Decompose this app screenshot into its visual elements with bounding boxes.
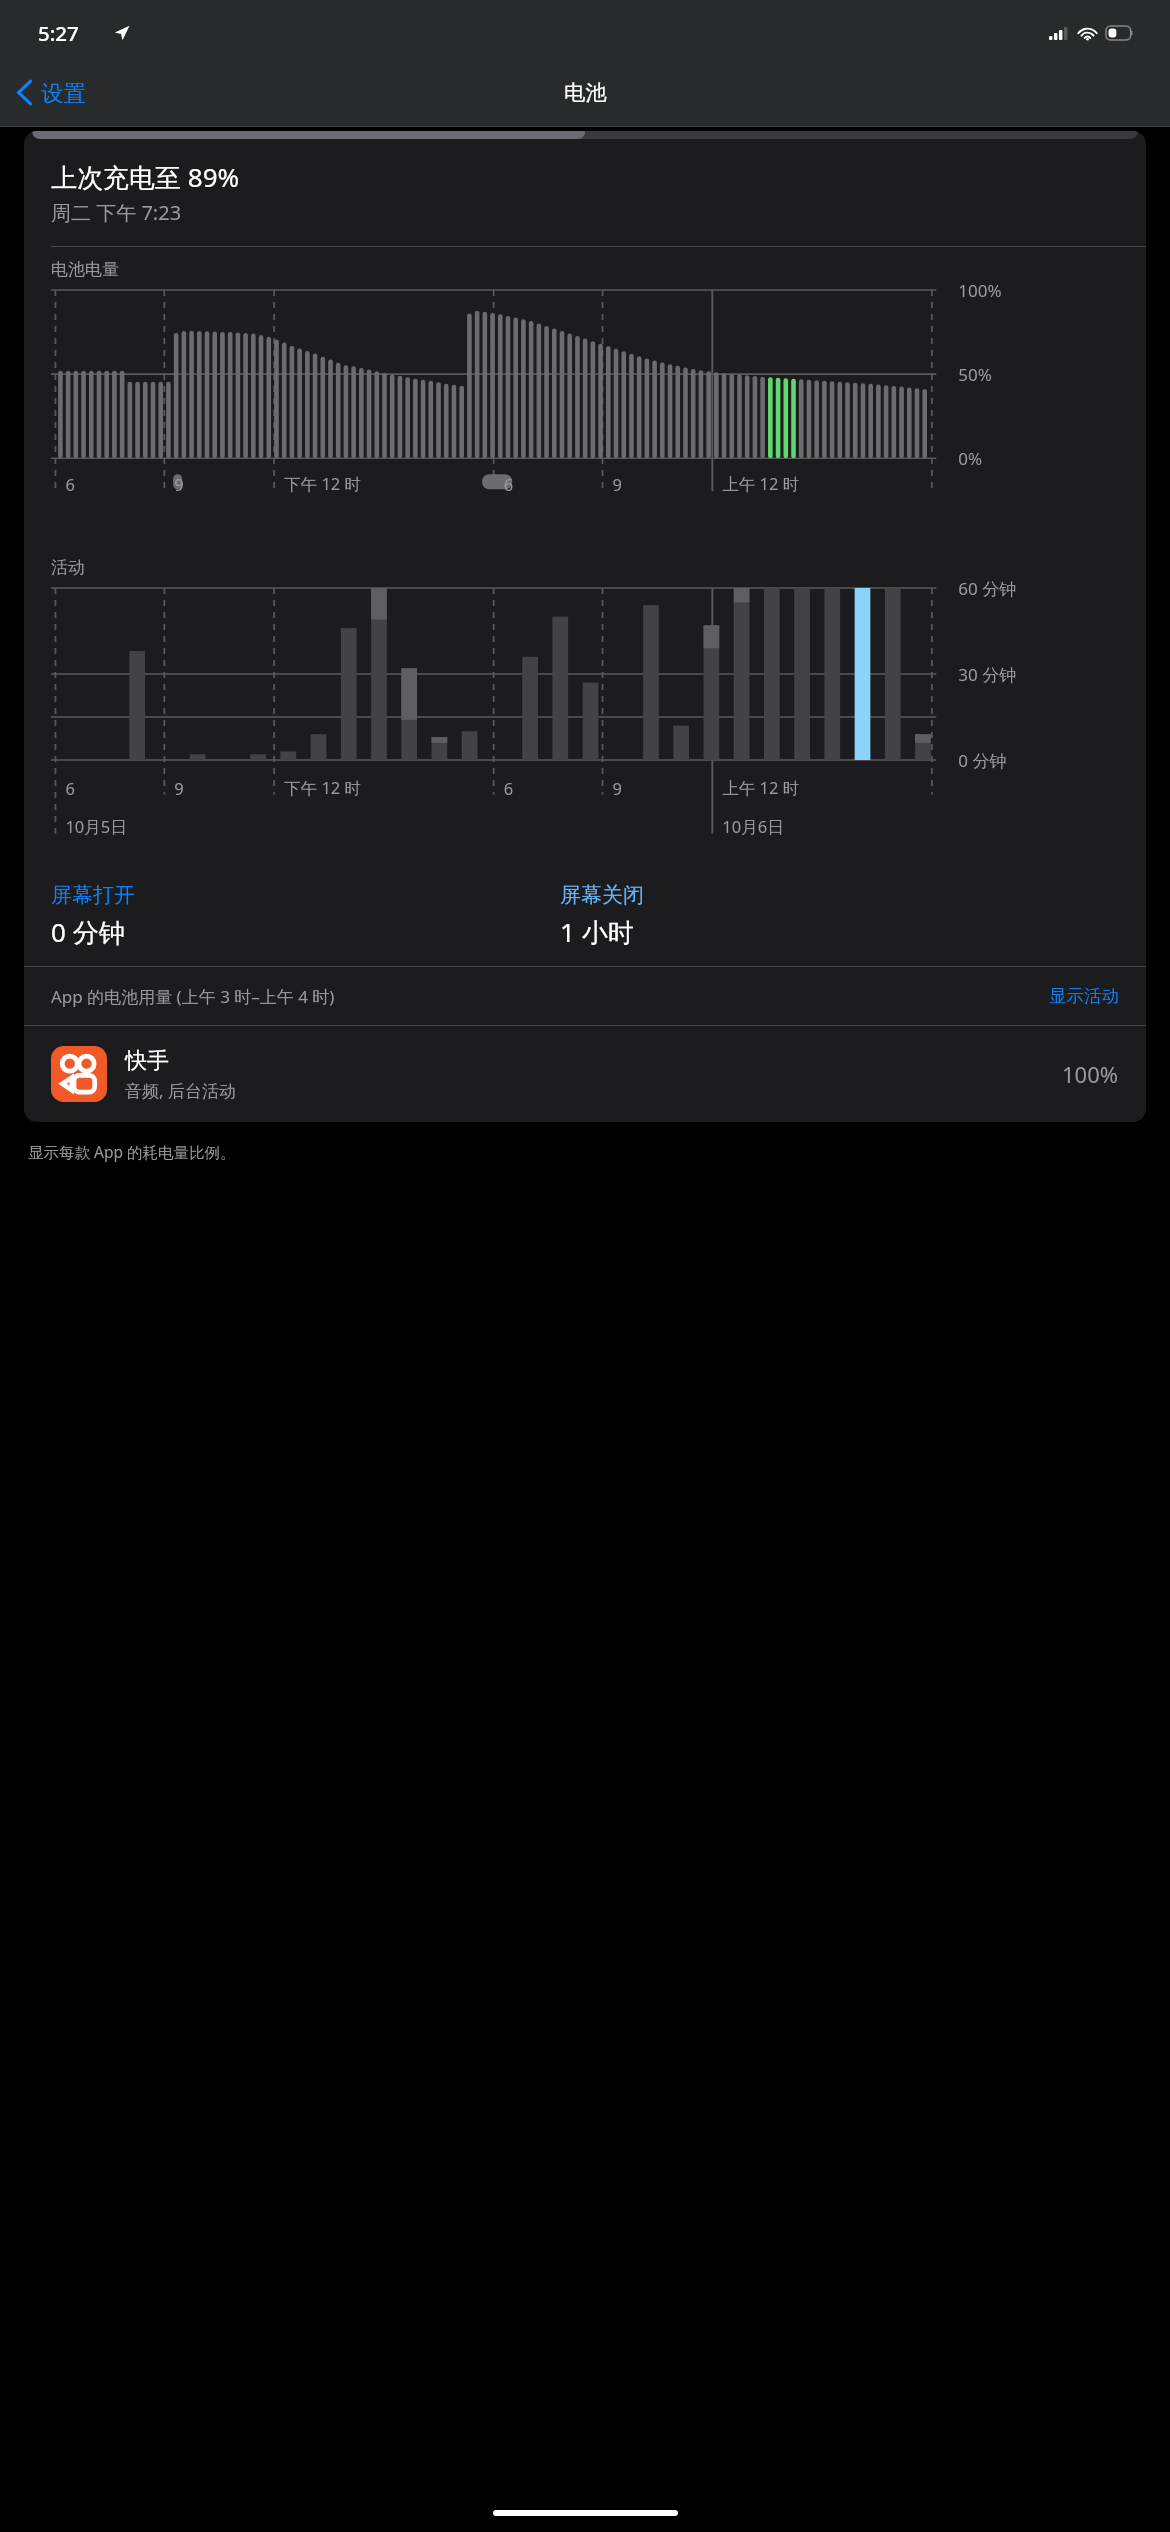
button[interactable]: 设置: [0, 70, 100, 115]
staticText: 快手: [125, 1047, 169, 1075]
staticText: 周二 下午 7:23: [51, 199, 182, 226]
staticText: 上次充电至 89%: [51, 159, 240, 195]
button[interactable]: [32, 131, 585, 139]
staticText: 显示每款 App 的耗电量比例。: [28, 1141, 236, 1162]
button[interactable]: 显示活动: [1041, 985, 1119, 1007]
staticText: 0 分钟: [51, 914, 125, 950]
staticText: 活动: [51, 557, 85, 578]
staticText: 5:27: [38, 19, 79, 47]
staticText: 电池: [564, 79, 607, 106]
staticText: 设置: [41, 79, 86, 107]
staticText: 音频, 后台活动: [125, 1079, 236, 1102]
staticText: App 的电池用量 (上午 3 时–上午 4 时): [51, 985, 1041, 1008]
staticText: 100%: [1062, 1059, 1119, 1089]
button[interactable]: 快手: [24, 1026, 1146, 1122]
staticText: 电池电量: [51, 259, 119, 280]
staticText: 屏幕打开: [51, 882, 135, 908]
staticText: 1 小时: [560, 914, 634, 950]
staticText: 显示活动: [1049, 985, 1119, 1007]
staticText: 屏幕关闭: [560, 882, 644, 908]
